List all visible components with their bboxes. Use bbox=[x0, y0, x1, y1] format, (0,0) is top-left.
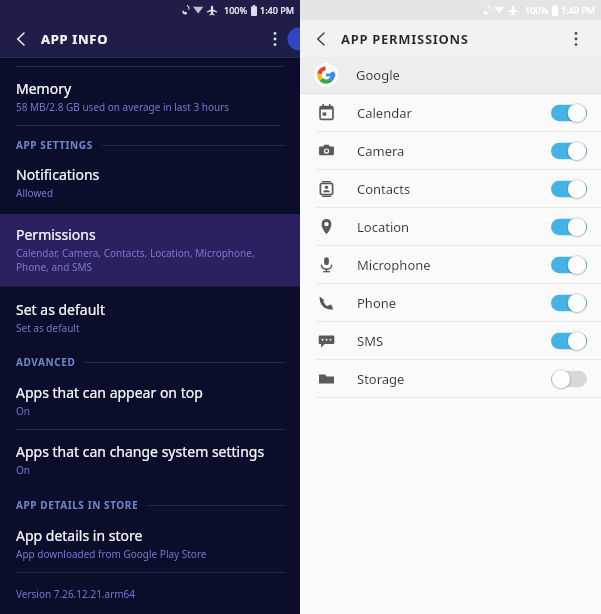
staticText: Location bbox=[357, 218, 410, 236]
button[interactable]: On bbox=[551, 331, 587, 351]
staticText: Set as default bbox=[16, 321, 80, 335]
button[interactable]: Off bbox=[551, 369, 587, 389]
staticText: Apps that can change system settings bbox=[16, 442, 265, 461]
button[interactable]: Microphone bbox=[300, 246, 601, 283]
button[interactable]: On bbox=[551, 103, 587, 123]
button[interactable]: On bbox=[551, 255, 587, 275]
button[interactable]: Google bbox=[300, 57, 601, 93]
staticText: APP SETTINGS bbox=[16, 138, 93, 152]
button[interactable]: Permissions bbox=[0, 214, 300, 286]
staticText: 1:40 PM bbox=[260, 4, 294, 16]
button[interactable]: Set as default bbox=[0, 300, 300, 349]
button[interactable]: Apps that can appear on top bbox=[0, 383, 300, 429]
staticText: 100% bbox=[525, 4, 549, 16]
button[interactable]: Storage bbox=[300, 360, 601, 397]
staticText: On bbox=[16, 404, 30, 418]
staticText: Version 7.26.12.21.arm64 bbox=[16, 587, 136, 601]
staticText: On bbox=[16, 463, 30, 477]
button[interactable]: Notifications bbox=[0, 165, 300, 214]
button[interactable]: Memory bbox=[0, 67, 300, 125]
staticText: Phone bbox=[357, 294, 397, 312]
button[interactable]: On bbox=[551, 293, 587, 313]
staticText: Google bbox=[356, 66, 400, 84]
button[interactable]: More options bbox=[262, 26, 288, 52]
staticText: APP INFO bbox=[41, 30, 109, 48]
staticText: Camera bbox=[357, 142, 405, 160]
button[interactable]: More options bbox=[563, 26, 589, 52]
staticText: APP DETAILS IN STORE bbox=[16, 498, 139, 512]
button[interactable]: Apps that can change system settings bbox=[0, 430, 300, 488]
button[interactable]: On bbox=[551, 179, 587, 199]
staticText: Calendar bbox=[357, 104, 412, 122]
button[interactable]: Camera bbox=[300, 132, 601, 169]
button[interactable]: On bbox=[551, 217, 587, 237]
button[interactable]: Back bbox=[306, 24, 336, 54]
staticText: 100% bbox=[224, 4, 248, 16]
staticText: Permissions bbox=[16, 225, 96, 244]
button[interactable]: Contacts bbox=[300, 170, 601, 207]
staticText: 1:40 PM bbox=[561, 4, 595, 16]
button[interactable]: Phone bbox=[300, 284, 601, 321]
staticText: Notifications bbox=[16, 165, 100, 184]
staticText: APP PERMISSIONS bbox=[341, 30, 469, 48]
staticText: SMS bbox=[357, 332, 384, 350]
staticText: Apps that can appear on top bbox=[16, 383, 203, 402]
staticText: App details in store bbox=[16, 526, 143, 545]
staticText: Set as default bbox=[16, 300, 105, 319]
staticText: ADVANCED bbox=[16, 355, 76, 369]
staticText: App downloaded from Google Play Store bbox=[16, 547, 207, 561]
button[interactable]: Back bbox=[6, 24, 36, 54]
staticText: Storage bbox=[357, 370, 405, 388]
staticText: Contacts bbox=[357, 180, 411, 198]
button[interactable]: SMS bbox=[300, 322, 601, 359]
button[interactable]: App details in store bbox=[0, 526, 300, 572]
staticText: 58 MB/2.8 GB used on average in last 3 h… bbox=[16, 100, 230, 114]
staticText: Microphone bbox=[357, 256, 431, 274]
staticText: Calendar, Camera, Contacts, Location, Mi… bbox=[16, 246, 255, 274]
staticText: Memory bbox=[16, 79, 72, 98]
button[interactable]: Calendar bbox=[300, 94, 601, 131]
button[interactable]: On bbox=[551, 141, 587, 161]
staticText: Allowed bbox=[16, 186, 54, 200]
button[interactable]: Location bbox=[300, 208, 601, 245]
